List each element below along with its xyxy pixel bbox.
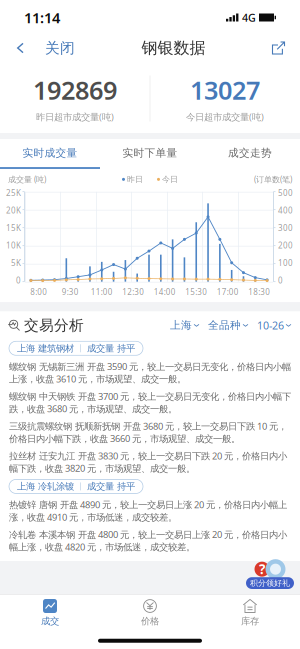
staticText: 17:00 [217,287,239,297]
staticText: 4G [242,10,256,25]
staticText: 今日 [162,174,178,184]
staticText: 11:00 [91,287,113,297]
button[interactable]: 成交走势 [200,139,300,167]
staticText: 9:30 [62,287,79,297]
staticText: 全品种 [208,319,241,332]
staticText: 5K [11,258,21,268]
staticText: 热镀锌 唐钢 开盘 4890 元，较上一交易日上涨 20 元，价格日内小幅上涨，… [9,498,287,523]
staticText: 今日超市成交量(吨) [186,111,264,123]
staticText: 实时下单量 [122,146,177,160]
button[interactable]: 实时下单量 [100,139,200,167]
staticText: 18:30 [248,287,270,297]
staticText: 昨日 [127,174,143,184]
staticText: 15:30 [185,287,207,297]
staticText: 10K [6,240,21,251]
staticText: 200 [278,240,293,251]
staticText: 成交走势 [228,146,272,160]
staticText: 11:14 [24,8,60,27]
staticText: 300 [278,223,293,233]
staticText: 成交量 (吨) [8,174,46,185]
staticText: 冷轧涂镀 [38,481,74,492]
staticText: ? [259,560,265,578]
staticText: 8:00 [30,287,47,297]
staticText: 实时成交量 [22,146,77,160]
staticText: 螺纹钢 无锡新三洲 开盘 3590 元，较上一交易日无变化，价格日内小幅上涨，收… [9,360,291,385]
staticText: 库存 [241,615,259,627]
staticText: 持平 [117,343,135,354]
staticText: 三级抗震螺纹钢 抚顺新抚钢 开盘 3680 元，较上一交易日下跌 10 元，价格… [9,420,287,445]
staticText: 成交量 [87,343,114,354]
staticText: 12:30 [122,287,144,297]
staticText: 25K [6,188,21,198]
staticText: 建筑钢材 [38,343,74,354]
staticText: 交易分析 [24,316,84,334]
staticText: 400 [278,205,293,216]
button[interactable]: 全品种 [208,315,248,336]
staticText: 上海 [17,481,35,492]
staticText: 积分领好礼 [250,578,290,588]
staticText: 持平 [117,481,135,492]
button[interactable]: 关闭 [0,32,85,64]
staticText: 0 [278,275,283,286]
button[interactable]: 价格 [100,595,200,631]
staticText: 上海 [170,319,192,332]
button[interactable]: 分享 [262,32,300,64]
staticText: 拉丝材 迁安九江 开盘 3830 元，较上一交易日下跌 20 元，价格日内小幅下… [9,450,287,474]
staticText: 成交 [41,615,59,627]
staticText: (订单数(笔) [254,174,292,185]
staticText: 15K [6,223,21,233]
staticText: 0 [16,275,21,286]
staticText: 14:00 [154,287,176,297]
staticText: 昨日超市成交量(吨) [36,111,114,123]
button[interactable]: 库存 [200,595,300,631]
staticText: 价格 [141,615,159,627]
staticText: 13027 [190,73,260,107]
button[interactable]: 积分领好礼 [246,559,294,589]
staticText: 成交量 [87,481,114,492]
button[interactable]: 10-26 [257,314,291,336]
button[interactable]: 实时成交量 [0,139,100,167]
button[interactable]: 成交 [0,595,100,631]
staticText: 螺纹钢 中天钢铁 开盘 3700 元，较上一交易日无变化，价格日内小幅下跌，收盘… [9,390,291,415]
button[interactable]: 上海 [170,315,199,336]
staticText: 100 [278,258,293,268]
staticText: 10-26 [257,318,284,332]
staticText: 500 [278,188,293,198]
staticText: 20K [6,205,21,216]
staticText: 钢银数据 [141,38,205,58]
staticText: 关闭 [45,39,75,57]
staticText: 上海 [17,343,35,354]
staticText: 192869 [33,73,117,107]
staticText: 冷轧卷 本溪本钢 开盘 4800 元，较上一交易日上涨 20 元，价格日内小幅上… [9,528,287,553]
